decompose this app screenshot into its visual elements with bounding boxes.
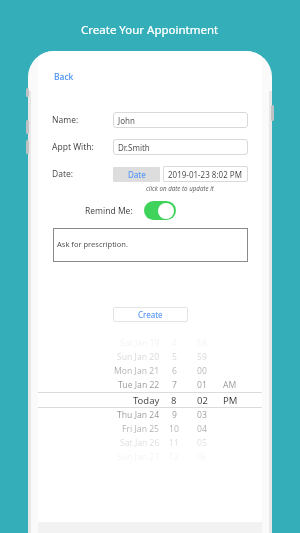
staticText: 58 (197, 337, 207, 349)
staticText: 03 (197, 409, 207, 421)
staticText: 8 (171, 394, 177, 407)
staticText: Remind Me: (85, 205, 133, 217)
button[interactable]: Dr.Smith (113, 139, 248, 155)
staticText: 00 (197, 365, 207, 377)
staticText: John (118, 115, 135, 126)
staticText: 2019-01-23 8:02 PM (168, 169, 242, 180)
staticText: 6 (172, 365, 177, 377)
staticText: AM (223, 379, 237, 391)
staticText: Sun Jan 20 (117, 351, 160, 363)
staticText: 7 (172, 379, 177, 391)
button[interactable]: Back (52, 69, 76, 85)
staticText: Sat Jan 26 (120, 437, 160, 449)
staticText: 5 (172, 351, 177, 363)
staticText: Date (128, 169, 146, 180)
button[interactable]: 2019-01-23 8:02 PM (163, 166, 248, 182)
button[interactable]: Create (113, 307, 188, 322)
staticText: 59 (197, 351, 207, 363)
button[interactable]: Date (113, 167, 160, 182)
staticText: Back (54, 71, 74, 83)
button[interactable]: Remind Me toggle (144, 201, 176, 220)
staticText: Create (138, 309, 163, 320)
staticText: Sat Jan 19 (120, 337, 160, 349)
staticText: Appt With: (52, 141, 94, 153)
staticText: Dr.Smith (118, 142, 150, 153)
staticText: click on date to update it (146, 184, 214, 192)
staticText: Create Your Appointment (81, 22, 219, 38)
staticText: 05 (197, 437, 207, 449)
staticText: 9 (172, 409, 177, 421)
staticText: 4 (172, 337, 177, 349)
staticText: Tue Jan 22 (118, 379, 160, 391)
staticText: Ask for prescription. (57, 239, 128, 249)
button[interactable]: Ask for prescription. (53, 228, 248, 262)
staticText: Mon Jan 21 (114, 365, 160, 377)
staticText: 10 (169, 423, 179, 435)
staticText: Fri Jan 25 (122, 423, 160, 435)
button[interactable]: John (113, 112, 248, 128)
staticText: 02 (197, 394, 208, 407)
staticText: Thu Jan 24 (117, 409, 160, 421)
staticText: Today (133, 394, 160, 407)
staticText: 11 (169, 437, 179, 449)
staticText: 01 (197, 379, 207, 391)
button[interactable]: Date and time picker (38, 336, 262, 533)
staticText: Date: (52, 168, 74, 180)
staticText: PM (223, 394, 238, 407)
staticText: 04 (197, 423, 207, 435)
staticText: Name: (52, 114, 79, 126)
